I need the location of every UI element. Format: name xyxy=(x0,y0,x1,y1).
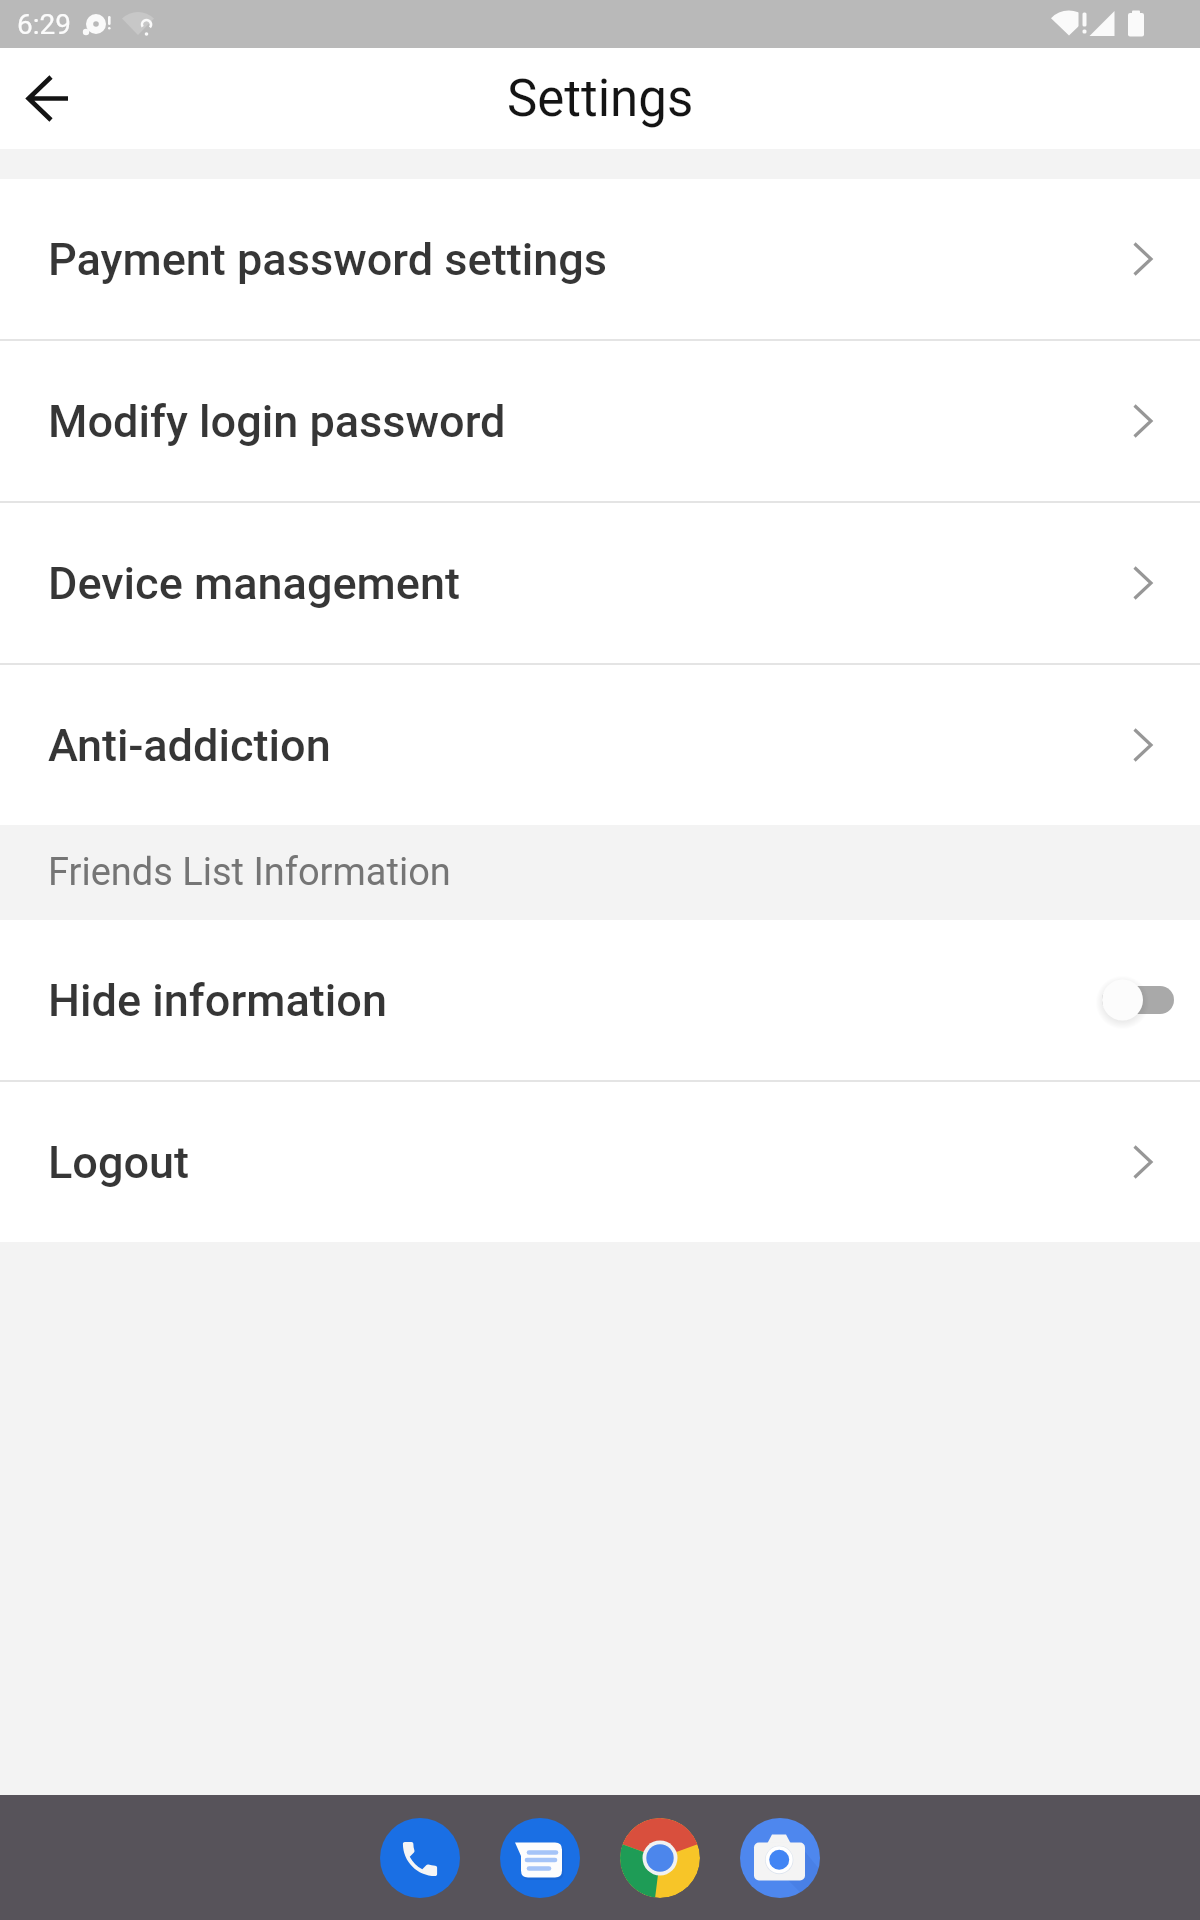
staticText: Friends List Information xyxy=(48,850,451,895)
staticText: Device management xyxy=(48,557,460,610)
staticText: Modify login password xyxy=(48,395,506,448)
staticText: Payment password settings xyxy=(48,233,607,286)
button[interactable] xyxy=(620,1818,700,1898)
button[interactable]: Payment password settings xyxy=(0,179,1200,339)
button[interactable]: Logout xyxy=(0,1082,1200,1242)
staticText: Hide information xyxy=(48,974,387,1027)
button[interactable] xyxy=(740,1818,820,1898)
button[interactable]: Hide information xyxy=(0,920,1200,1080)
staticText: Logout xyxy=(48,1136,190,1189)
button[interactable]: Device management xyxy=(0,503,1200,663)
button[interactable]: Modify login password xyxy=(0,341,1200,501)
button[interactable] xyxy=(380,1818,460,1898)
button[interactable] xyxy=(500,1818,580,1898)
button[interactable]: Anti-addiction xyxy=(0,665,1200,825)
button[interactable] xyxy=(0,48,96,149)
staticText: Anti-addiction xyxy=(48,719,331,772)
staticText: Settings xyxy=(507,69,694,129)
staticText: 6:29 xyxy=(17,8,71,41)
button[interactable] xyxy=(1101,973,1174,1027)
